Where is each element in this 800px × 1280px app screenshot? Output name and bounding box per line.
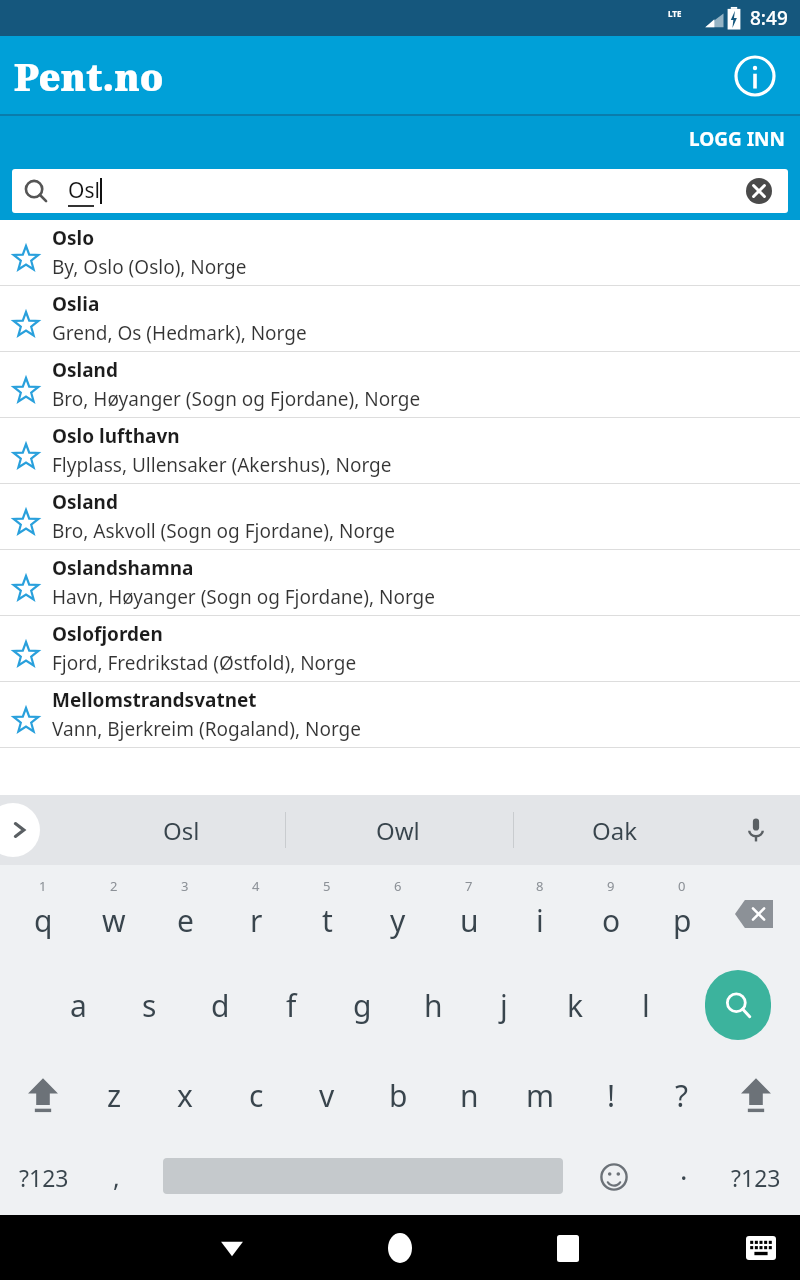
staticText: Oslandshamna	[52, 555, 194, 581]
button[interactable]: !	[576, 1055, 646, 1135]
staticText: q	[34, 900, 53, 941]
button[interactable]: f	[256, 965, 326, 1045]
button[interactable]: Oslo	[0, 220, 800, 285]
button[interactable]: h	[398, 965, 468, 1045]
staticText: x	[177, 1075, 193, 1116]
staticText: r	[250, 900, 263, 941]
button[interactable]: Owl	[328, 795, 468, 865]
button[interactable]: c	[221, 1055, 291, 1135]
staticText: k	[567, 985, 584, 1026]
button[interactable]: Osland	[0, 484, 800, 549]
staticText: ?123	[19, 1162, 69, 1193]
button[interactable]: k	[540, 965, 610, 1045]
button[interactable]: Osl	[111, 795, 251, 865]
button[interactable]: Back	[200, 1216, 264, 1280]
staticText: s	[142, 985, 157, 1026]
staticText: Grend, Os (Hedmark), Norge	[52, 320, 307, 346]
button[interactable]: Oslo lufthavn	[0, 418, 800, 483]
staticText: Pent.no	[14, 51, 164, 101]
button[interactable]: Voice input	[734, 808, 778, 852]
button[interactable]: ·	[660, 1145, 708, 1209]
staticText: LTE	[668, 8, 682, 19]
button[interactable]: l	[611, 965, 681, 1045]
button[interactable]: 8	[505, 865, 575, 955]
button[interactable]: m	[505, 1055, 575, 1135]
staticText: Osland	[52, 489, 118, 515]
staticText: w	[102, 900, 126, 941]
staticText: 1	[39, 877, 47, 895]
button[interactable]: Search	[705, 970, 771, 1040]
button[interactable]: Backspace	[722, 885, 786, 943]
staticText: y	[390, 900, 406, 941]
button[interactable]: Shift	[721, 1055, 791, 1135]
button[interactable]: 6	[363, 865, 433, 955]
staticText: Owl	[376, 814, 420, 847]
staticText: ?123	[731, 1162, 781, 1193]
button[interactable]: ?123	[720, 1145, 792, 1209]
button[interactable]: ,	[88, 1145, 144, 1209]
button[interactable]: 4	[221, 865, 291, 955]
staticText: Bro, Høyanger (Sogn og Fjordane), Norge	[52, 386, 421, 412]
button[interactable]: Shift	[8, 1055, 78, 1135]
button[interactable]: n	[434, 1055, 504, 1135]
button[interactable]: Mellomstrandsvatnet	[0, 682, 800, 747]
button[interactable]: 5	[292, 865, 362, 955]
button[interactable]: 3	[150, 865, 220, 955]
staticText: By, Oslo (Oslo), Norge	[52, 254, 247, 280]
button[interactable]: Recents	[536, 1216, 600, 1280]
staticText: 2	[110, 877, 118, 895]
staticText: ?	[675, 1075, 689, 1116]
staticText: 9	[607, 877, 615, 895]
button[interactable]: b	[363, 1055, 433, 1135]
staticText: !	[607, 1075, 616, 1116]
button[interactable]: 0	[647, 865, 717, 955]
button[interactable]: 9	[576, 865, 646, 955]
button[interactable]: a	[43, 965, 113, 1045]
button[interactable]: LOGG INN	[675, 120, 800, 158]
button[interactable]: 7	[434, 865, 504, 955]
button[interactable]: Osl	[12, 169, 788, 213]
button[interactable]: v	[292, 1055, 362, 1135]
button[interactable]: Oslia	[0, 286, 800, 351]
button[interactable]: Info	[732, 53, 778, 99]
staticText: u	[460, 900, 479, 941]
staticText: Osl	[68, 176, 100, 205]
button[interactable]: 1	[8, 865, 78, 955]
staticText: Oslo lufthavn	[52, 423, 180, 449]
button[interactable]: Expand suggestions	[0, 803, 40, 857]
staticText: 6	[394, 877, 402, 895]
button[interactable]: Emoji	[588, 1145, 640, 1209]
button[interactable]: x	[150, 1055, 220, 1135]
staticText: Flyplass, Ullensaker (Akershus), Norge	[52, 452, 392, 478]
staticText: n	[460, 1075, 479, 1116]
staticText: g	[353, 985, 372, 1026]
button[interactable]: g	[327, 965, 397, 1045]
button[interactable]: Switch keyboard	[734, 1221, 788, 1275]
staticText: c	[249, 1075, 264, 1116]
staticText: Osl	[163, 814, 200, 847]
staticText: i	[536, 900, 544, 941]
staticText: b	[389, 1075, 408, 1116]
staticText: 3	[181, 877, 189, 895]
button[interactable]: Osland	[0, 352, 800, 417]
button[interactable]: Oslofjorden	[0, 616, 800, 681]
staticText: z	[107, 1075, 122, 1116]
button[interactable]: Home	[368, 1216, 432, 1280]
button[interactable]: d	[185, 965, 255, 1045]
staticText: 5	[323, 877, 331, 895]
staticText: 8	[536, 877, 544, 895]
button[interactable]: Oslandshamna	[0, 550, 800, 615]
staticText: 0	[678, 877, 686, 895]
button[interactable]: j	[469, 965, 539, 1045]
button[interactable]: 2	[79, 865, 149, 955]
staticText: Bro, Askvoll (Sogn og Fjordane), Norge	[52, 518, 395, 544]
button[interactable]: z	[79, 1055, 149, 1135]
staticText: 7	[465, 877, 473, 895]
button[interactable]: Clear search	[744, 176, 774, 206]
button[interactable]: ?	[647, 1055, 717, 1135]
staticText: ,	[113, 1160, 120, 1194]
button[interactable]: s	[114, 965, 184, 1045]
button[interactable]: Oak	[545, 795, 685, 865]
button[interactable]: ?123	[8, 1145, 80, 1209]
